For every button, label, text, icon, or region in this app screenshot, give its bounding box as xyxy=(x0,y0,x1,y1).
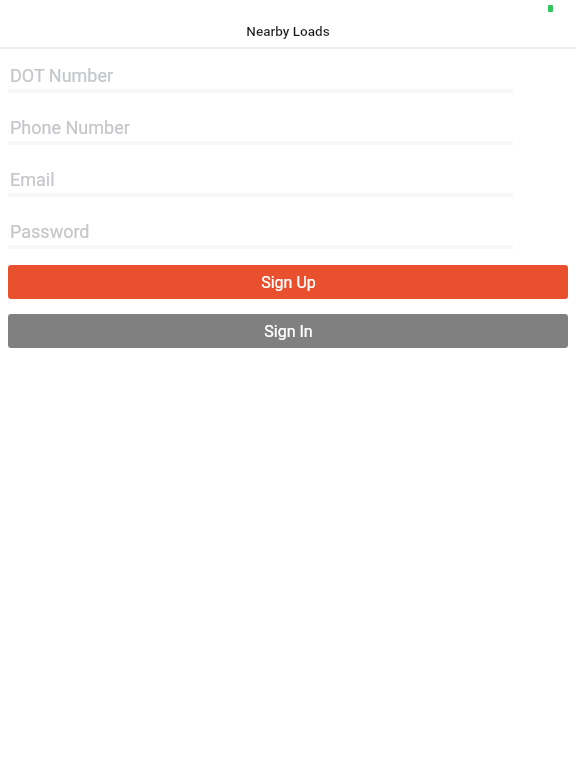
button[interactable]: Password xyxy=(8,212,513,249)
staticText: Password xyxy=(10,221,90,242)
button[interactable]: Phone Number xyxy=(8,108,513,145)
staticText: Nearby Loads xyxy=(246,23,330,39)
staticText: Sign In xyxy=(264,322,313,341)
staticText: DOT Number xyxy=(10,65,114,86)
button[interactable]: DOT Number xyxy=(8,56,513,93)
staticText: Phone Number xyxy=(10,117,130,138)
button[interactable]: Sign In xyxy=(8,314,568,348)
button[interactable]: Sign Up xyxy=(8,265,568,299)
staticText: Sign Up xyxy=(261,273,316,292)
other: Battery full xyxy=(548,5,553,12)
button[interactable]: Email xyxy=(8,160,513,197)
staticText: Email xyxy=(10,169,55,190)
